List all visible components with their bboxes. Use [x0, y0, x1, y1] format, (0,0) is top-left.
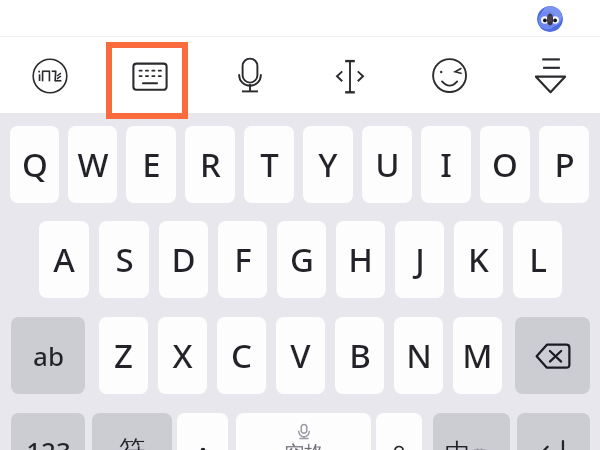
button[interactable]: V — [276, 317, 325, 394]
staticText: A — [53, 237, 75, 282]
button[interactable]: Backspace — [515, 317, 590, 394]
staticText: Y — [318, 142, 338, 187]
staticText: L — [529, 237, 547, 282]
staticText: V — [290, 333, 311, 378]
button[interactable]: Edit text — [300, 37, 400, 113]
button[interactable]: Q — [10, 126, 59, 203]
button[interactable]: C — [217, 317, 266, 394]
staticText: I — [440, 142, 452, 187]
button[interactable]: P — [539, 126, 589, 203]
button[interactable]: Keyboard — [100, 37, 200, 113]
button[interactable]: Y — [303, 126, 353, 203]
button[interactable]: U — [362, 126, 412, 203]
button[interactable]: Voice input — [200, 37, 300, 113]
button[interactable]: A — [39, 221, 89, 298]
staticText: 符 — [119, 434, 145, 450]
button[interactable]: Z — [99, 317, 148, 394]
button[interactable]: F — [218, 221, 267, 298]
button[interactable]: M — [453, 317, 502, 394]
button[interactable]: J — [395, 221, 444, 298]
staticText: N — [406, 333, 432, 378]
button[interactable]: Profile — [537, 6, 563, 32]
button[interactable]: N — [394, 317, 443, 394]
button[interactable]: 符 — [92, 413, 172, 450]
button[interactable]: E — [126, 126, 176, 203]
staticText: H — [348, 237, 373, 282]
button[interactable]: Period — [376, 413, 422, 450]
button[interactable]: Comma — [177, 413, 228, 450]
button[interactable]: S — [99, 221, 149, 298]
button[interactable]: B — [335, 317, 384, 394]
staticText: T — [260, 142, 279, 187]
button[interactable]: ab — [11, 317, 85, 394]
staticText: O — [492, 142, 518, 187]
button[interactable]: Space — [236, 413, 371, 450]
button[interactable]: X — [158, 317, 207, 394]
staticText: U — [375, 142, 400, 187]
button[interactable]: Keyboard layout — [112, 48, 182, 113]
staticText: R — [200, 142, 221, 187]
staticText: G — [290, 237, 314, 282]
staticText: ab — [33, 338, 64, 373]
staticText: P — [554, 142, 575, 187]
staticText: 123 — [26, 433, 71, 450]
button[interactable]: L — [513, 221, 562, 298]
staticText: X — [172, 333, 193, 378]
staticText: C — [231, 333, 252, 378]
staticText: 空格 — [284, 441, 324, 450]
staticText: E — [142, 142, 161, 187]
button[interactable]: Enter — [517, 413, 590, 450]
button[interactable]: K — [454, 221, 503, 298]
button[interactable]: G — [277, 221, 326, 298]
button[interactable]: O — [480, 126, 530, 203]
staticText: Q — [22, 142, 48, 187]
button[interactable]: iFlytek — [0, 37, 100, 113]
button[interactable]: Hide keyboard — [500, 37, 600, 113]
staticText: M — [462, 333, 493, 378]
button[interactable]: H — [336, 221, 385, 298]
staticText: K — [468, 237, 489, 282]
button[interactable]: Chinese / English — [433, 413, 510, 450]
button[interactable]: W — [68, 126, 117, 203]
staticText: Z — [114, 333, 133, 378]
staticText: W — [77, 142, 109, 187]
button[interactable]: D — [159, 221, 208, 298]
button[interactable]: R — [185, 126, 235, 203]
staticText: B — [349, 333, 371, 378]
button[interactable]: I — [421, 126, 471, 203]
staticText: J — [415, 237, 425, 282]
button[interactable]: 123 — [11, 413, 85, 450]
staticText: 英 — [474, 446, 486, 450]
staticText: 中 — [445, 437, 471, 450]
button[interactable]: Emoji — [400, 37, 500, 113]
button[interactable]: T — [244, 126, 294, 203]
staticText: S — [115, 237, 134, 282]
staticText: F — [234, 237, 252, 282]
staticText: D — [171, 237, 196, 282]
